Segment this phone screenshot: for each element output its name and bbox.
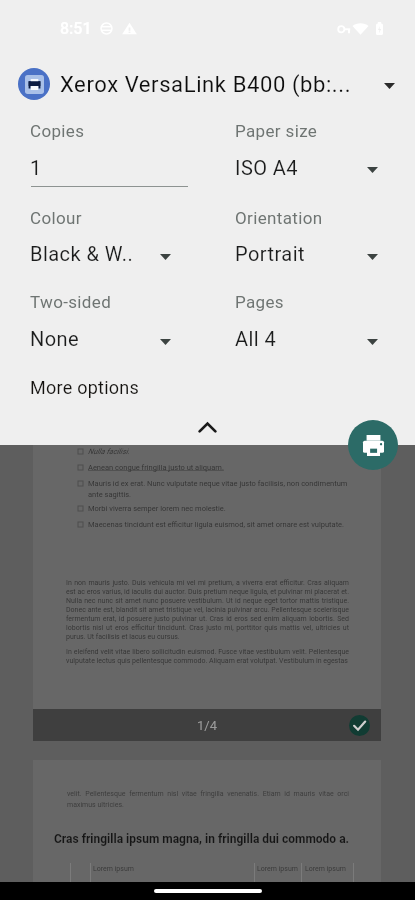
staticText: More options bbox=[30, 377, 140, 398]
staticText: Lorem ipsum bbox=[257, 865, 298, 873]
staticText: 1/4 bbox=[197, 718, 217, 733]
staticText: Black & W.. bbox=[30, 242, 134, 265]
staticText: Orientation bbox=[235, 208, 323, 228]
staticText: Two-sided bbox=[30, 292, 112, 312]
staticText: Lorem ipsum bbox=[305, 865, 346, 873]
staticText: Maecenas tincidunt est efficitur ligula … bbox=[88, 520, 353, 529]
button[interactable]: Collapse bbox=[0, 412, 415, 442]
staticText: Xerox VersaLink B400 (bb:... bbox=[60, 72, 352, 98]
staticText: None bbox=[30, 327, 80, 350]
staticText: All 4 bbox=[235, 327, 277, 350]
staticText: Mauris id ex erat. Nunc vulputate neque … bbox=[88, 479, 353, 499]
staticText: 1 bbox=[30, 156, 42, 179]
staticText: Portrait bbox=[235, 242, 305, 265]
staticText: In eleifend velit vitae libero sollicitu… bbox=[66, 648, 349, 665]
staticText: Colour bbox=[30, 208, 82, 228]
button[interactable]: More options bbox=[23, 371, 147, 404]
staticText: Copies bbox=[30, 121, 85, 141]
staticText: Lorem ipsum bbox=[93, 865, 134, 873]
staticText: In non mauris justo. Duis vehicula mi ve… bbox=[66, 579, 349, 641]
staticText: 8:51 bbox=[60, 19, 92, 38]
staticText: Cras fringilla ipsum magna, in fringilla… bbox=[54, 832, 350, 846]
staticText: velit. Pellentesque fermentum nisl vitae… bbox=[67, 790, 349, 809]
staticText: Morbi viverra semper lorem nec molestie. bbox=[88, 504, 353, 513]
button[interactable]: Print bbox=[348, 420, 398, 470]
button[interactable]: Xerox VersaLink B400 (bb:... bbox=[0, 58, 415, 114]
staticText: Paper size bbox=[235, 121, 318, 141]
staticText: Pages bbox=[235, 292, 284, 312]
staticText: ISO A4 bbox=[235, 156, 299, 179]
staticText: Aenean congue fringilla justo ut aliquam… bbox=[88, 463, 353, 472]
staticText: Nulla facilisi. bbox=[88, 447, 353, 456]
